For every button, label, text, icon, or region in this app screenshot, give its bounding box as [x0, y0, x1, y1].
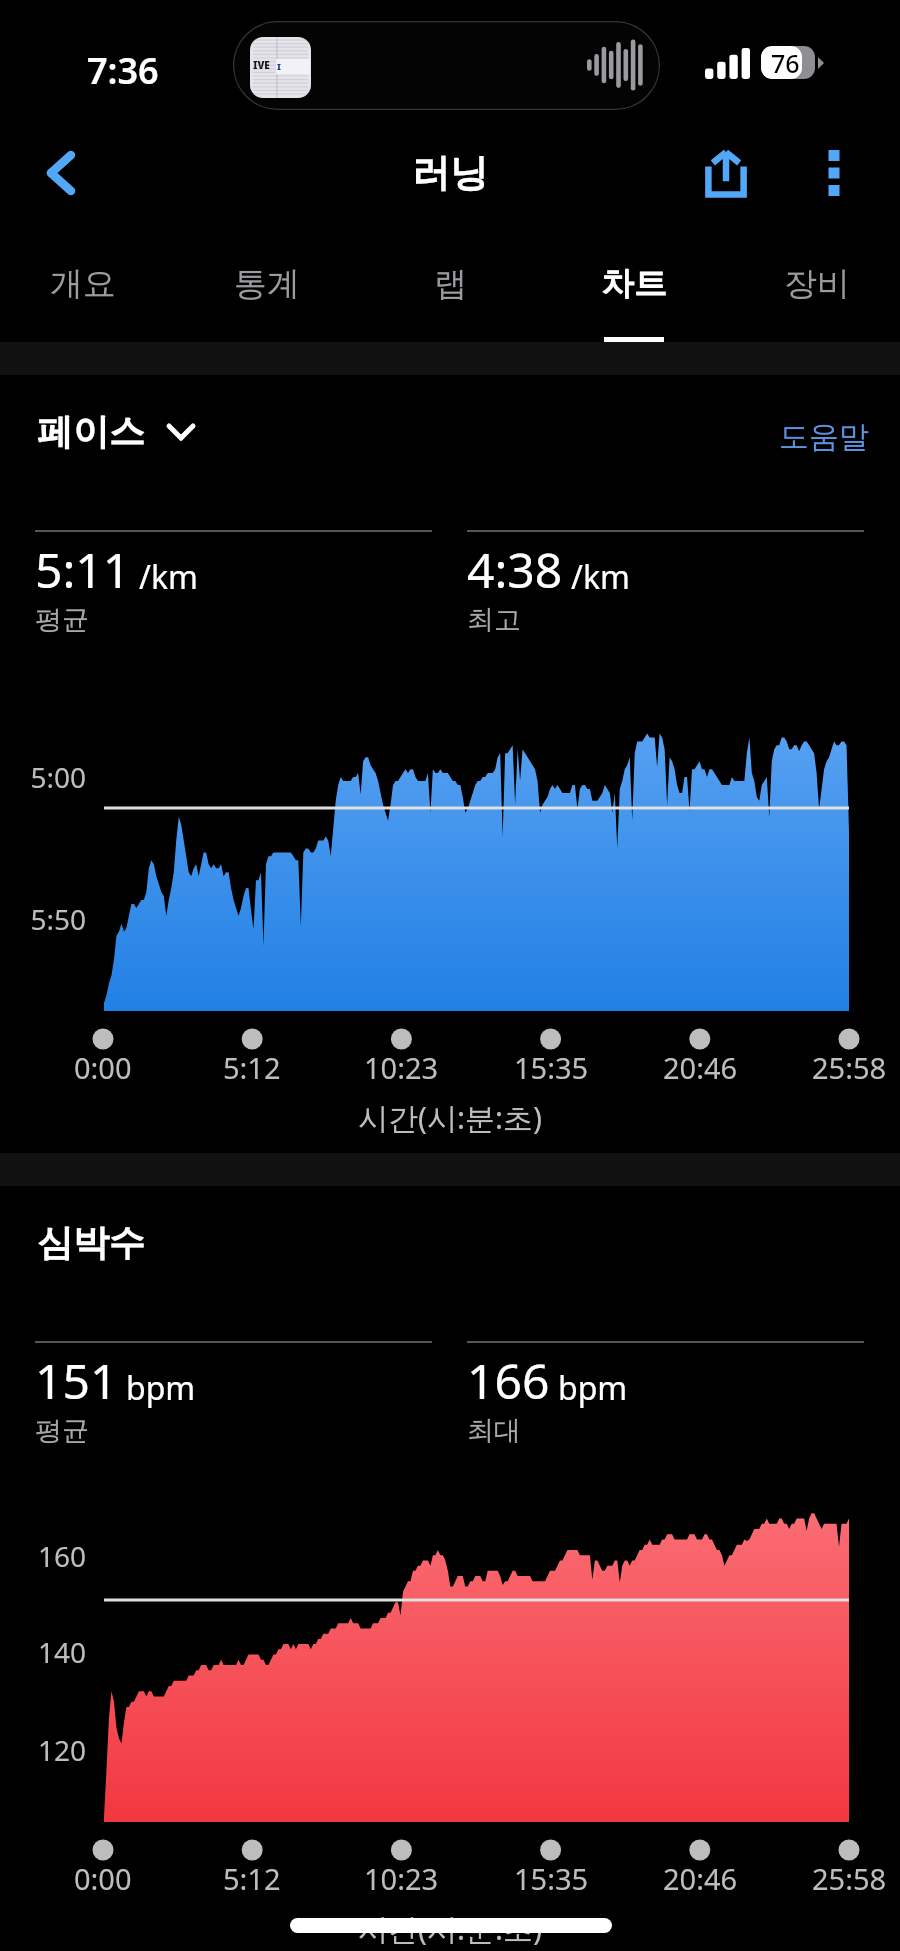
- staticText: 평균: [35, 1414, 89, 1448]
- staticText: 5:50: [18, 900, 86, 938]
- staticText: 20:46: [663, 1859, 738, 1898]
- staticText: 0:00: [74, 1859, 132, 1898]
- staticText: 7:36: [87, 46, 159, 95]
- staticText: bpm: [558, 1366, 628, 1410]
- staticText: 도움말: [779, 418, 869, 456]
- staticText: 시간(시:분:초): [358, 1097, 543, 1138]
- button[interactable]: 페이스: [25, 399, 207, 464]
- staticText: 심박수: [37, 1220, 145, 1265]
- staticText: 15:35: [514, 1048, 589, 1087]
- staticText: 최고: [467, 603, 521, 637]
- staticText: 평균: [35, 603, 89, 637]
- button[interactable]: 차트: [544, 225, 724, 342]
- staticText: 76: [771, 46, 800, 79]
- staticText: 120: [18, 1731, 86, 1769]
- button[interactable]: Share: [682, 120, 770, 225]
- staticText: 5:12: [223, 1048, 281, 1087]
- button[interactable]: 도움말: [767, 406, 881, 468]
- button[interactable]: 심박수: [25, 1210, 157, 1275]
- button[interactable]: 개요: [0, 225, 173, 342]
- staticText: 최대: [467, 1414, 521, 1448]
- staticText: 4:38: [467, 537, 563, 602]
- staticText: /km: [139, 555, 198, 599]
- staticText: 통계: [234, 263, 300, 305]
- staticText: 5:12: [223, 1859, 281, 1898]
- staticText: 5:11: [35, 537, 131, 602]
- button[interactable]: Back: [16, 120, 106, 225]
- staticText: 10:23: [364, 1048, 439, 1087]
- staticText: 25:58: [812, 1048, 887, 1087]
- staticText: 151: [35, 1348, 118, 1413]
- staticText: 장비: [784, 263, 850, 305]
- staticText: 5:00: [18, 758, 86, 796]
- staticText: IVE: [253, 58, 270, 72]
- staticText: 랩: [434, 263, 467, 305]
- button[interactable]: 장비: [727, 225, 900, 342]
- staticText: 10:23: [364, 1859, 439, 1898]
- staticText: 차트: [601, 263, 667, 305]
- staticText: 140: [18, 1633, 86, 1671]
- staticText: I WANT: [277, 60, 311, 75]
- staticText: bpm: [126, 1366, 196, 1410]
- button[interactable]: 통계: [177, 225, 357, 342]
- button[interactable]: More options: [790, 120, 878, 225]
- staticText: 페이스: [37, 409, 145, 454]
- staticText: 20:46: [663, 1048, 738, 1087]
- staticText: 개요: [50, 263, 116, 305]
- staticText: 25:58: [812, 1859, 887, 1898]
- staticText: 시간(시:분:초): [358, 1908, 543, 1949]
- button[interactable]: 랩: [360, 225, 540, 342]
- staticText: 15:35: [514, 1859, 589, 1898]
- staticText: 166: [467, 1348, 550, 1413]
- staticText: 160: [18, 1537, 86, 1575]
- staticText: 러닝: [412, 149, 488, 197]
- staticText: /km: [571, 555, 630, 599]
- staticText: 0:00: [74, 1048, 132, 1087]
